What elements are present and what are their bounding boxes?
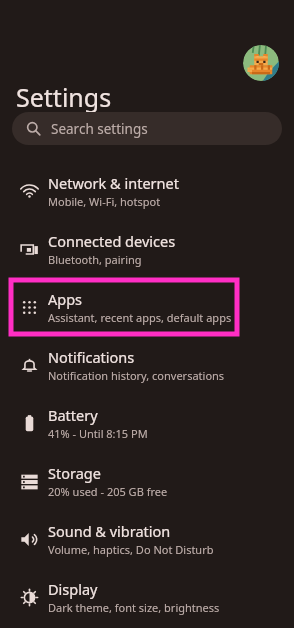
staticText: Battery (48, 405, 98, 425)
button[interactable]: Notifications (0, 338, 294, 392)
staticText: Mobile, Wi-Fi, hotspot (48, 194, 161, 209)
staticText: 41% - Until 8:15 PM (48, 426, 148, 441)
button[interactable]: Connected devices (0, 222, 294, 276)
button[interactable]: Storage (0, 454, 294, 508)
staticText: Network & internet (48, 173, 179, 193)
staticText: Display (48, 579, 98, 599)
button[interactable]: Apps (0, 280, 294, 334)
button[interactable]: Sound & vibration (0, 512, 294, 566)
button[interactable]: Battery (0, 396, 294, 450)
staticText: Notifications (48, 347, 135, 367)
staticText: Assistant, recent apps, default apps (48, 310, 232, 325)
staticText: Bluetooth, pairing (48, 252, 142, 267)
staticText: Sound & vibration (48, 521, 171, 541)
staticText: Settings (16, 80, 112, 114)
staticText: Notification history, conversations (48, 368, 225, 383)
staticText: Search settings (51, 120, 148, 138)
button[interactable]: Display (0, 570, 294, 624)
button[interactable]: Account avatar (243, 45, 279, 81)
staticText: Dark theme, font size, brightness (48, 600, 220, 615)
staticText: Apps (48, 289, 83, 309)
staticText: 20% used - 205 GB free (48, 484, 168, 499)
staticText: Volume, haptics, Do Not Disturb (48, 542, 214, 557)
button[interactable]: Search settings (12, 112, 282, 145)
button[interactable]: Network & internet (0, 164, 294, 218)
staticText: Connected devices (48, 231, 176, 251)
staticText: Storage (48, 463, 101, 483)
